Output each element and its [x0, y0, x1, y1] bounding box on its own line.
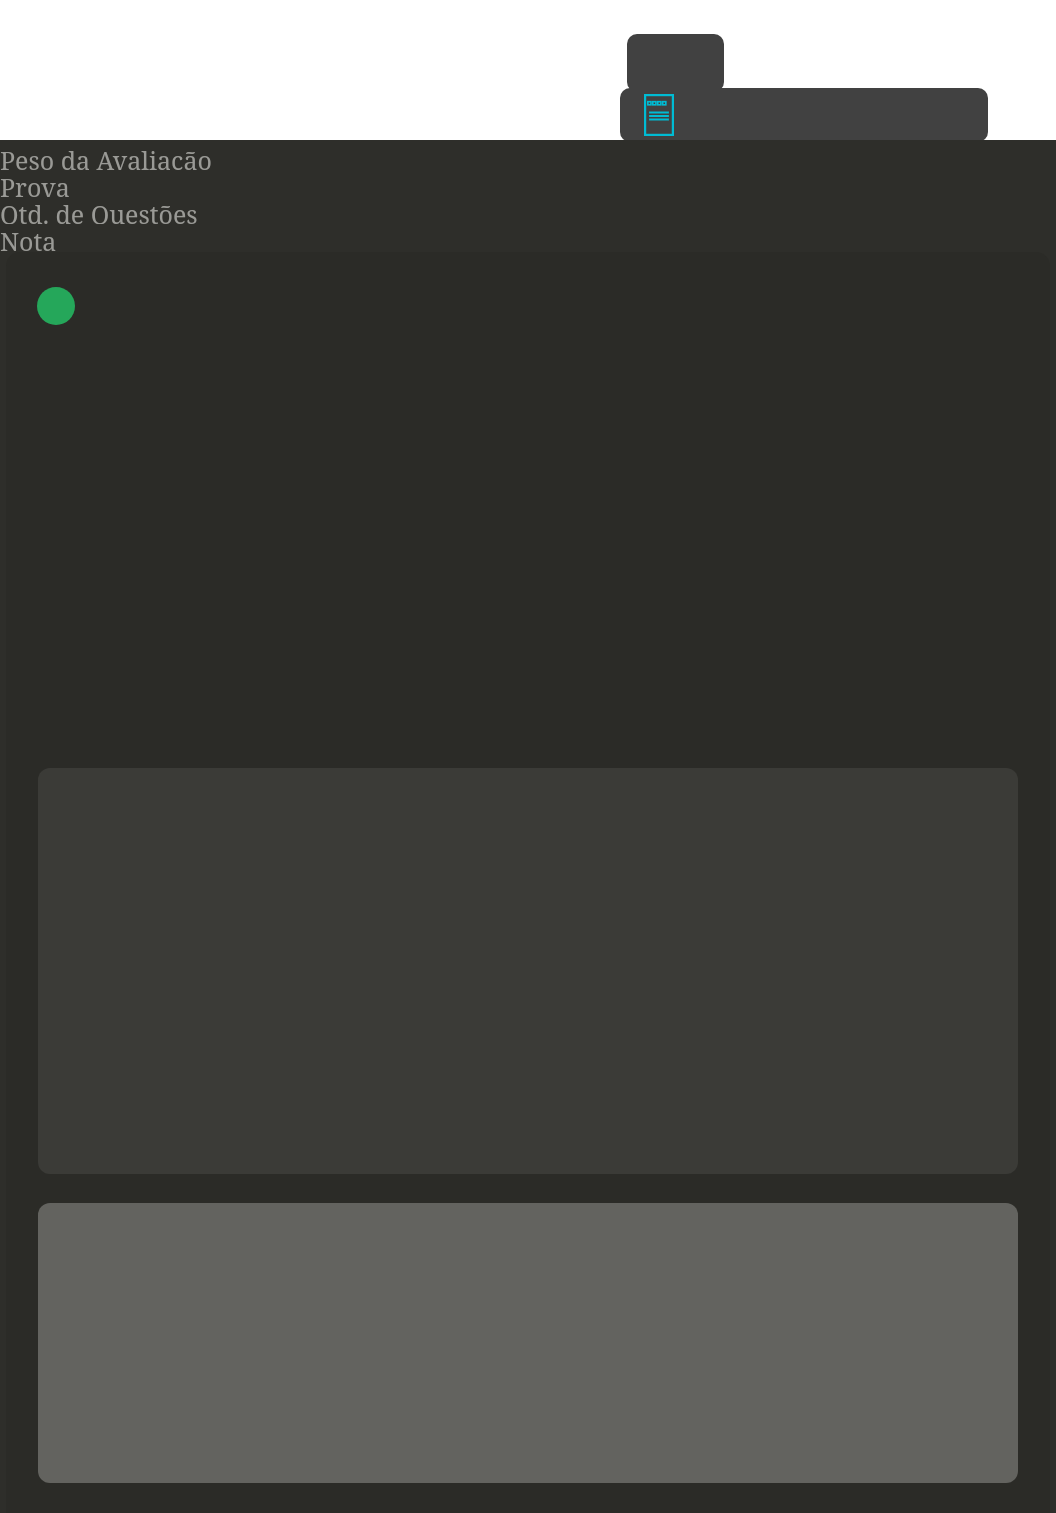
button[interactable]: Menu surface [627, 34, 724, 92]
staticText: Peso da Avaliação [0, 143, 212, 170]
button[interactable]: Avaliação [620, 88, 988, 142]
staticText: Qtd. de Questões [0, 197, 198, 224]
staticText: Nota [0, 224, 57, 251]
other: Avaliação [644, 94, 674, 136]
button[interactable]: Status [37, 287, 75, 325]
staticText: Prova [0, 170, 70, 197]
